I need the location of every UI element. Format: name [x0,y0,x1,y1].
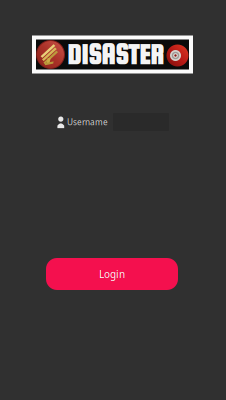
staticText: Login [99,267,125,281]
button[interactable]: Login [46,258,178,290]
staticText: DISASTER [67,39,164,70]
staticText: Username [67,116,108,128]
